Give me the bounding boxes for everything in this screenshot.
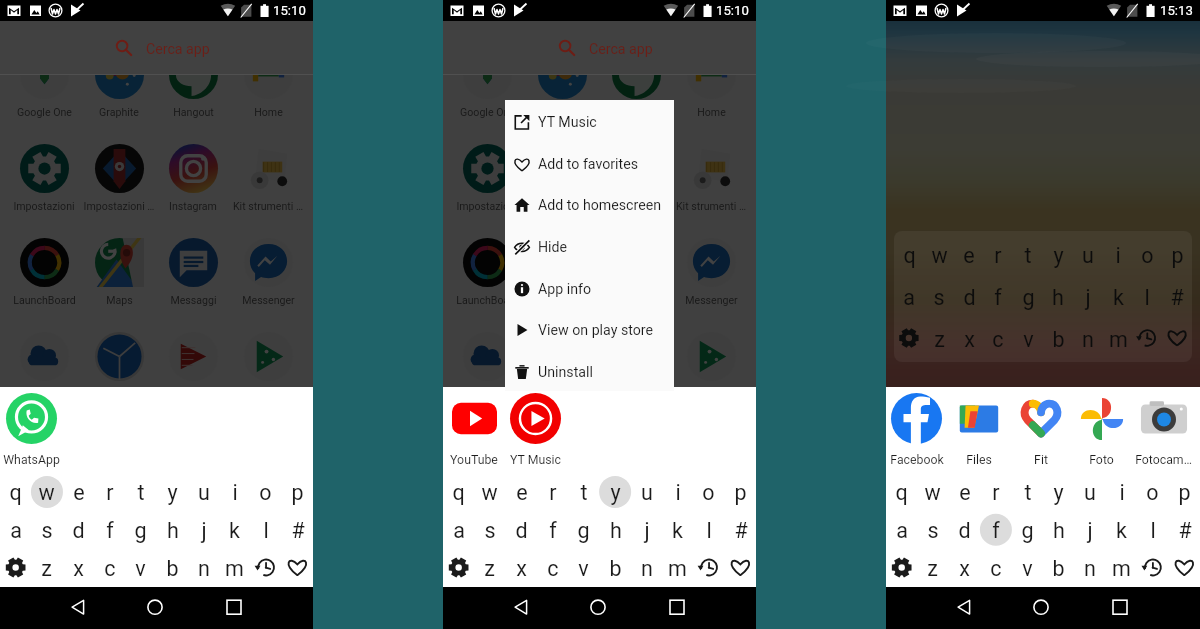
button[interactable]: m <box>1103 317 1133 359</box>
button[interactable]: Instagram <box>599 141 673 214</box>
button[interactable]: p <box>1169 473 1200 511</box>
button[interactable]: x <box>954 317 984 359</box>
button[interactable]: t <box>568 473 599 511</box>
button[interactable]: s <box>917 511 948 549</box>
button[interactable]: Recent <box>1132 317 1162 359</box>
button[interactable]: a <box>894 275 924 317</box>
button[interactable]: l <box>1132 275 1162 317</box>
button[interactable]: Graphite <box>82 75 156 120</box>
button[interactable]: b <box>157 549 188 587</box>
button[interactable]: s <box>474 511 505 549</box>
button[interactable]: Keyboard settings <box>0 549 31 587</box>
button[interactable]: z <box>474 549 505 587</box>
button[interactable]: y <box>157 473 188 511</box>
button[interactable] <box>156 329 230 388</box>
button[interactable]: z <box>924 317 954 359</box>
button[interactable]: e <box>949 473 980 511</box>
button[interactable]: WhatsApp <box>0 390 62 468</box>
button[interactable]: Hangout <box>599 75 673 120</box>
button[interactable]: k <box>1103 275 1133 317</box>
button[interactable]: u <box>631 473 662 511</box>
button[interactable]: k <box>1106 511 1137 549</box>
button[interactable]: Recent <box>250 549 281 587</box>
button[interactable]: w <box>31 473 62 511</box>
button[interactable]: n <box>631 549 662 587</box>
button[interactable]: q <box>894 233 924 275</box>
button[interactable]: o <box>250 473 281 511</box>
button[interactable]: Kit strumenti S... <box>674 141 748 214</box>
button[interactable]: j <box>1074 511 1105 549</box>
button[interactable]: d <box>506 511 537 549</box>
button[interactable]: Recents <box>663 593 691 621</box>
button[interactable]: u <box>188 473 219 511</box>
button[interactable]: Impostazioni <box>7 141 81 214</box>
button[interactable]: b <box>1043 317 1073 359</box>
button[interactable]: Favorites <box>1162 317 1192 359</box>
button[interactable]: Recents <box>220 593 248 621</box>
button[interactable]: i <box>1106 473 1137 511</box>
button[interactable]: Facebook <box>886 390 947 468</box>
button[interactable]: y <box>1043 473 1074 511</box>
button[interactable]: View on play store <box>505 309 674 351</box>
button[interactable]: Fit <box>1010 392 1071 469</box>
button[interactable]: p <box>1162 233 1192 275</box>
button[interactable] <box>674 329 748 388</box>
button[interactable]: y <box>600 473 631 511</box>
button[interactable]: Recent <box>693 549 724 587</box>
button[interactable]: v <box>568 549 599 587</box>
button[interactable]: n <box>1074 549 1105 587</box>
button[interactable]: c <box>94 549 125 587</box>
button[interactable]: Graphite <box>525 75 599 120</box>
button[interactable]: m <box>662 549 693 587</box>
button[interactable]: Home <box>231 75 305 120</box>
button[interactable]: u <box>1074 473 1105 511</box>
button[interactable]: i <box>662 473 693 511</box>
button[interactable]: q <box>0 473 31 511</box>
button[interactable]: j <box>1073 275 1103 317</box>
button[interactable]: q <box>886 473 917 511</box>
button[interactable]: n <box>188 549 219 587</box>
button[interactable]: LaunchBoard <box>450 235 524 308</box>
button[interactable]: g <box>1013 275 1043 317</box>
button[interactable]: r <box>94 473 125 511</box>
button[interactable]: e <box>506 473 537 511</box>
button[interactable]: Kit strumenti S... <box>231 141 305 214</box>
button[interactable]: t <box>125 473 156 511</box>
button[interactable]: Foto <box>1071 392 1132 469</box>
button[interactable]: Back <box>506 593 534 621</box>
button[interactable]: r <box>537 473 568 511</box>
button[interactable]: Back <box>63 593 91 621</box>
button[interactable]: j <box>188 511 219 549</box>
button[interactable]: d <box>954 275 984 317</box>
button[interactable]: z <box>917 549 948 587</box>
button[interactable]: Impostazioni N... <box>82 141 156 214</box>
button[interactable]: Uninstall <box>505 351 674 393</box>
button[interactable]: Keyboard settings <box>443 549 474 587</box>
button[interactable]: Impostazioni <box>450 141 524 214</box>
button[interactable]: Messaggi <box>156 235 230 308</box>
button[interactable]: x <box>949 549 980 587</box>
button[interactable]: w <box>917 473 948 511</box>
button[interactable]: p <box>725 473 756 511</box>
button[interactable]: a <box>886 511 917 549</box>
button[interactable]: r <box>983 233 1013 275</box>
button[interactable]: Google One <box>450 75 524 120</box>
button[interactable]: # <box>1162 275 1192 317</box>
button[interactable]: p <box>282 473 313 511</box>
button[interactable]: v <box>1013 317 1043 359</box>
button[interactable]: z <box>31 549 62 587</box>
button[interactable]: n <box>1073 317 1103 359</box>
button[interactable]: Home <box>141 593 169 621</box>
button[interactable]: Favorites <box>725 549 756 587</box>
button[interactable]: w <box>924 233 954 275</box>
button[interactable]: Add to homescreen <box>505 184 674 226</box>
button[interactable]: a <box>0 511 31 549</box>
button[interactable]: a <box>443 511 474 549</box>
button[interactable]: f <box>94 511 125 549</box>
button[interactable] <box>525 329 599 388</box>
button[interactable]: Recent <box>1137 549 1168 587</box>
button[interactable]: Back <box>949 593 977 621</box>
button[interactable]: h <box>157 511 188 549</box>
button[interactable]: LaunchBoard <box>7 235 81 308</box>
